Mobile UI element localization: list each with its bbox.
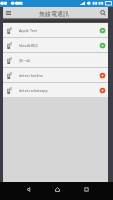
button[interactable]: Apple Test	[3, 23, 108, 37]
staticText: hktv4k測試	[19, 43, 99, 48]
staticText: Apple Test	[19, 28, 99, 33]
staticText: 第一組	[19, 58, 99, 63]
button[interactable]: Search	[98, 8, 107, 17]
button[interactable]: detect whatsapp	[3, 83, 108, 97]
staticText: detect whatsapp	[19, 88, 99, 93]
button[interactable]: detect hotline	[3, 68, 108, 82]
staticText: 無線電通訊	[39, 10, 69, 18]
button[interactable]: Recent apps	[79, 182, 93, 196]
staticText: detect hotline	[19, 73, 99, 78]
button[interactable]: Back	[21, 182, 35, 196]
button[interactable]: Home	[50, 182, 64, 196]
button[interactable]: hktv4k測試	[3, 38, 108, 52]
button[interactable]: Menu	[4, 8, 13, 17]
button[interactable]: 第一組	[3, 53, 108, 67]
